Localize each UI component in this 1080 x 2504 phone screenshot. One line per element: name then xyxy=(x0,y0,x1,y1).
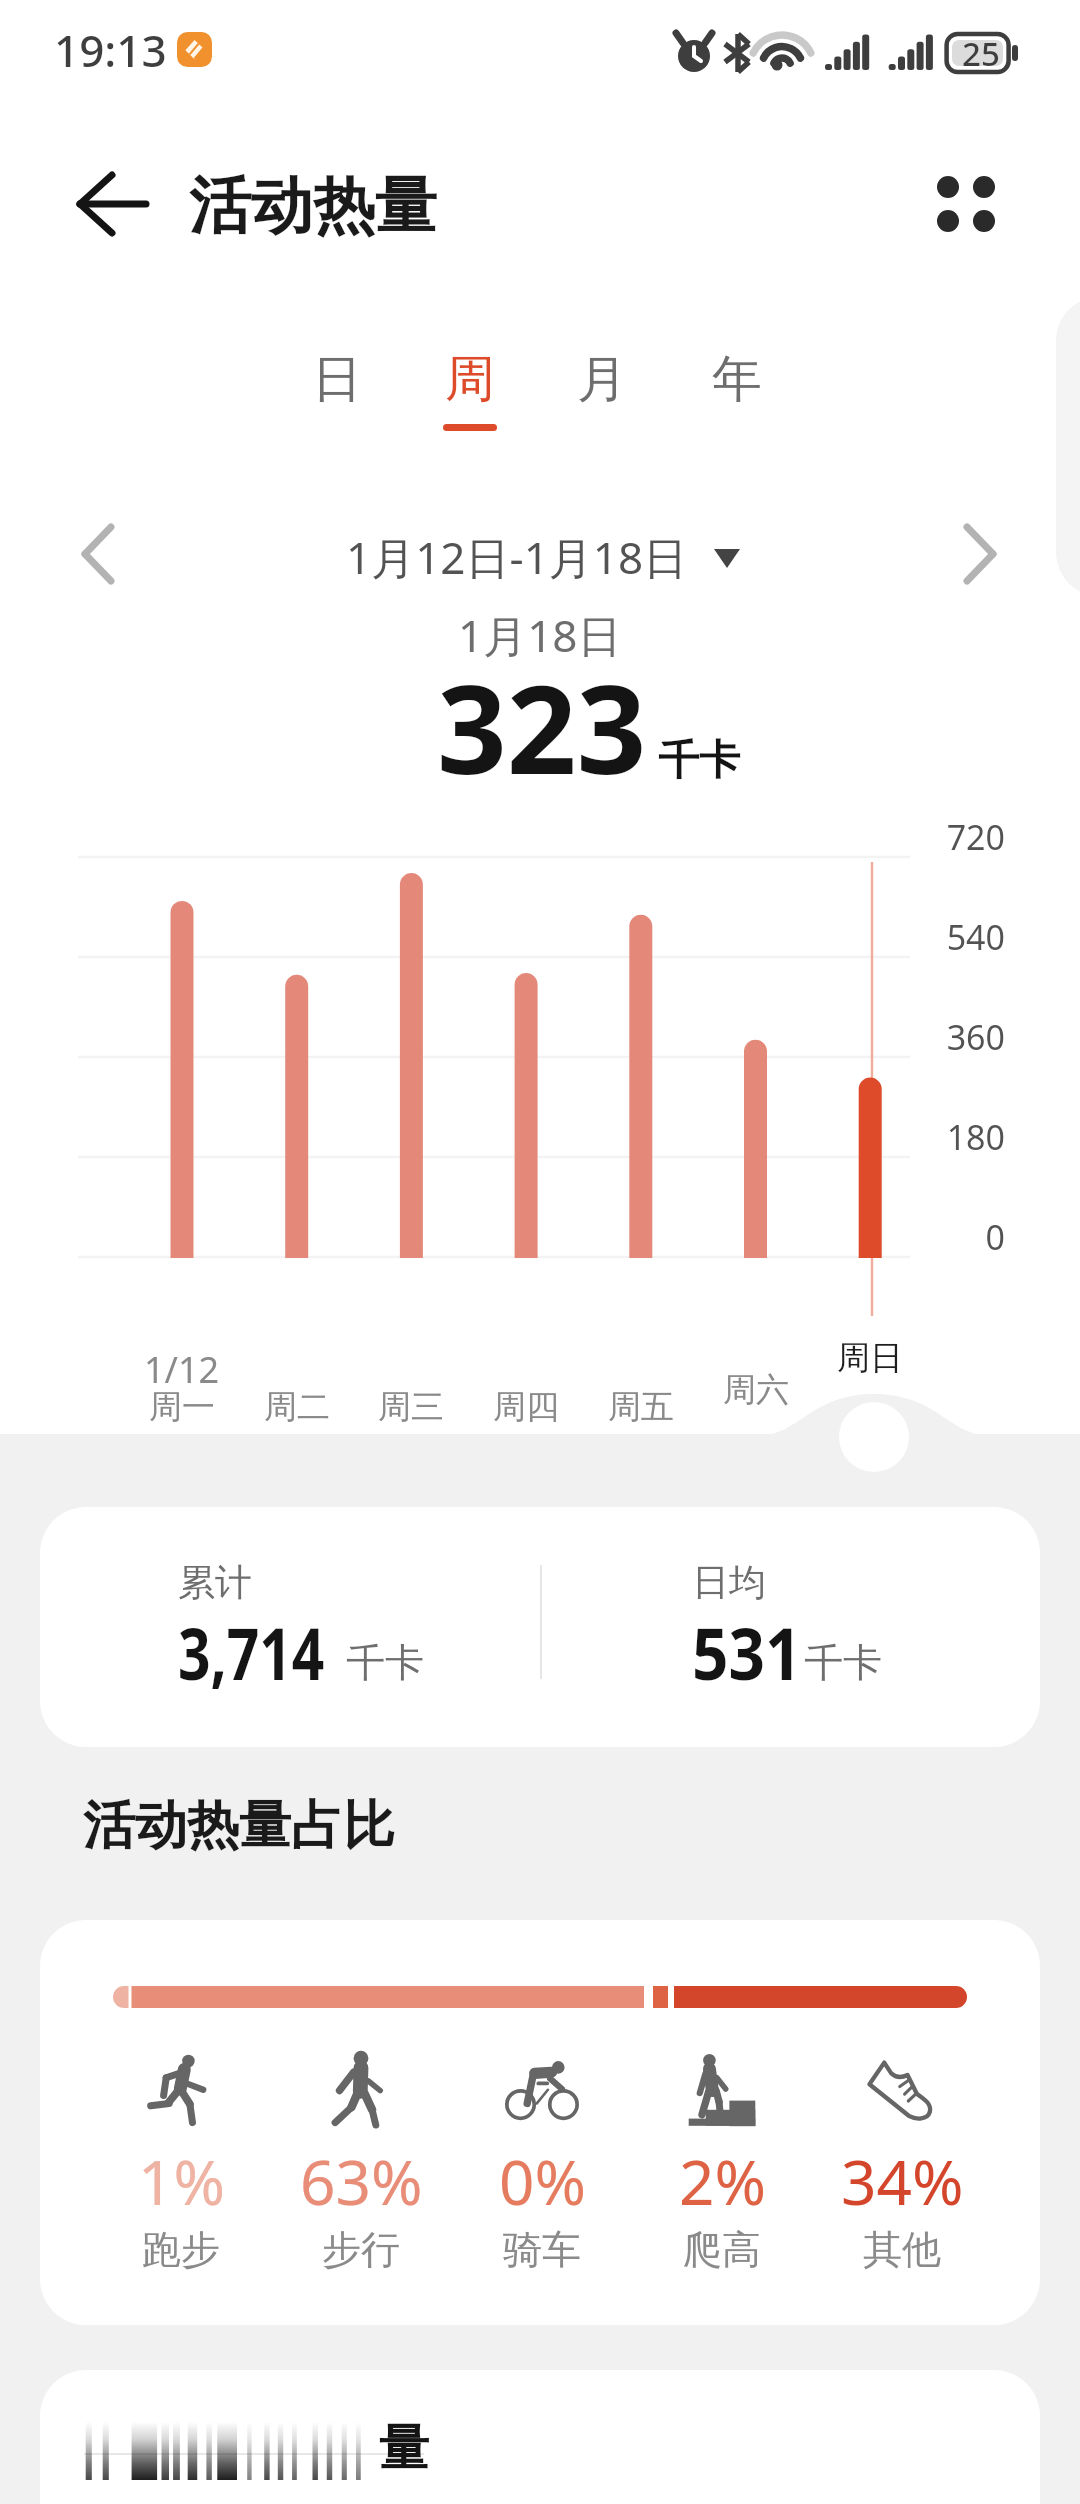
staticText: 2% xyxy=(679,2139,766,2223)
button[interactable]: Expand details xyxy=(839,1401,909,1471)
staticText: 周日 xyxy=(837,1337,903,1379)
staticText: 0 xyxy=(900,1214,1005,1260)
button[interactable]: 周日 xyxy=(810,1337,930,1379)
staticText: 3,714 xyxy=(178,1603,325,1701)
button[interactable]: 月 xyxy=(546,348,658,448)
staticText: 周四 xyxy=(493,1386,559,1428)
staticText: 1月12日-1月18日 xyxy=(346,527,688,587)
staticText: 63% xyxy=(300,2139,423,2223)
staticText: 540 xyxy=(900,914,1005,960)
staticText: 年 xyxy=(712,348,762,411)
button[interactable]: 年 xyxy=(681,348,793,448)
staticText: 19:13 xyxy=(54,20,167,80)
button[interactable]: 周三 xyxy=(351,1386,471,1428)
staticText: 量 xyxy=(379,2417,429,2480)
staticText: 千卡 xyxy=(804,1638,882,1687)
button[interactable]: 周二 xyxy=(237,1386,357,1428)
button[interactable]: 2% xyxy=(632,2030,812,2270)
staticText: 周二 xyxy=(264,1386,330,1428)
button[interactable]: 0% xyxy=(452,2030,632,2270)
staticText: 34% xyxy=(841,2139,964,2223)
button[interactable]: 周五 xyxy=(581,1386,701,1428)
staticText: 180 xyxy=(900,1114,1005,1160)
staticText: 周五 xyxy=(608,1386,674,1428)
button[interactable]: 周一 xyxy=(122,1386,242,1428)
staticText: 1/12 xyxy=(144,1345,220,1394)
button[interactable]: Next week xyxy=(938,512,1022,596)
button[interactable]: 1% xyxy=(91,2030,271,2270)
button[interactable]: 周六 xyxy=(696,1369,816,1411)
staticText: 1月18日 xyxy=(458,605,622,665)
button[interactable]: Back xyxy=(58,155,154,251)
staticText: 步行 xyxy=(322,2225,400,2274)
staticText: 月 xyxy=(577,348,627,411)
button[interactable]: 34% xyxy=(812,2030,992,2270)
staticText: 日 xyxy=(312,348,362,411)
staticText: 累计 xyxy=(178,1559,252,1606)
staticText: 骑车 xyxy=(503,2225,581,2274)
button[interactable]: 周四 xyxy=(466,1386,586,1428)
staticText: 720 xyxy=(900,814,1005,860)
staticText: 日均 xyxy=(692,1559,766,1606)
staticText: 323 xyxy=(437,644,647,810)
button[interactable]: 周 xyxy=(414,348,526,448)
button[interactable]: 1% xyxy=(40,1920,1040,2325)
staticText: 周六 xyxy=(723,1369,789,1411)
button[interactable]: 63% xyxy=(271,2030,451,2270)
staticText: 千卡 xyxy=(346,1638,424,1687)
staticText: 531 xyxy=(692,1603,802,1701)
staticText: 周 xyxy=(445,348,495,411)
button[interactable]: 日 xyxy=(281,348,393,448)
staticText: 周一 xyxy=(149,1386,215,1428)
button[interactable]: More options xyxy=(920,159,1012,251)
staticText: 周三 xyxy=(378,1386,444,1428)
staticText: 千卡 xyxy=(658,735,740,787)
button[interactable]: 累计 xyxy=(40,1507,1040,1747)
staticText: 其他 xyxy=(863,2225,941,2274)
staticText: 25 xyxy=(962,31,1000,76)
button[interactable]: Floating panel xyxy=(1056,296,1080,597)
staticText: 1% xyxy=(138,2139,225,2223)
staticText: 活动热量 xyxy=(189,167,437,245)
staticText: 跑步 xyxy=(142,2225,220,2274)
staticText: 活动热量占比 xyxy=(83,1793,395,1859)
staticText: 0% xyxy=(499,2139,586,2223)
staticText: 爬高 xyxy=(683,2225,761,2274)
staticText: 360 xyxy=(900,1014,1005,1060)
button[interactable]: Previous week xyxy=(56,512,140,596)
